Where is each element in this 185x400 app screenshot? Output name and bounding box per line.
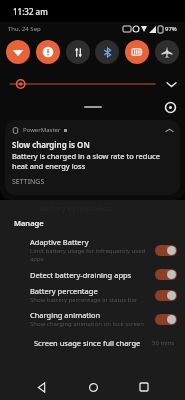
staticText: Charging animation [30,310,101,320]
button[interactable]: Do not disturb [36,40,60,64]
button[interactable]: Screen usage since full charge [0,331,185,355]
button[interactable]: Detect battery-draining apps [0,266,185,283]
button[interactable]: Mobile data [66,40,90,64]
staticText: 50 mins [152,339,175,347]
button[interactable]: Recents [133,376,155,398]
staticText: Detect battery-draining apps [30,270,132,280]
button[interactable]: Detect battery-draining apps toggle [155,269,177,280]
staticText: 11:32 am [13,6,48,17]
staticText: Slow charging is ON [12,139,90,150]
button[interactable]: SETTINGS [12,177,45,187]
staticText: Limit battery usage for infrequently use… [30,247,149,263]
button[interactable]: Airplane mode [155,40,179,64]
button[interactable]: Home [82,376,104,398]
button[interactable]: Adaptive Battery toggle [155,245,177,256]
button[interactable]: Settings [163,100,177,114]
staticText: Adaptive Battery [30,237,89,247]
button[interactable]: Charging animation [0,307,185,331]
button[interactable]: Wi-Fi [6,40,30,64]
staticText: Screen usage since full charge [34,338,141,348]
button[interactable]: Charging animation toggle [155,314,177,325]
staticText: Show battery percentage in status bar [30,296,138,304]
staticText: Show charging animation on lock screen [30,320,144,328]
staticText: SETTINGS [12,177,45,187]
staticText: Manage [14,218,44,228]
button[interactable]: PowerMaster [5,120,180,195]
staticText: PowerMaster [23,126,61,134]
button[interactable]: Battery saver [125,40,149,64]
staticText: Thu, 24 Sep [8,25,41,33]
button[interactable]: Expand [163,76,179,92]
button[interactable]: Battery percentage [0,283,185,307]
staticText: Battery percentage [30,286,98,296]
button[interactable]: Battery percentage toggle [155,290,177,301]
staticText: 97% [165,25,177,33]
staticText: Battery is charged in a slow rate to red… [12,151,173,171]
button[interactable]: Adaptive Battery [0,234,185,266]
button[interactable]: Bluetooth [95,40,119,64]
button[interactable]: Back [30,376,52,398]
button[interactable] [8,76,157,92]
